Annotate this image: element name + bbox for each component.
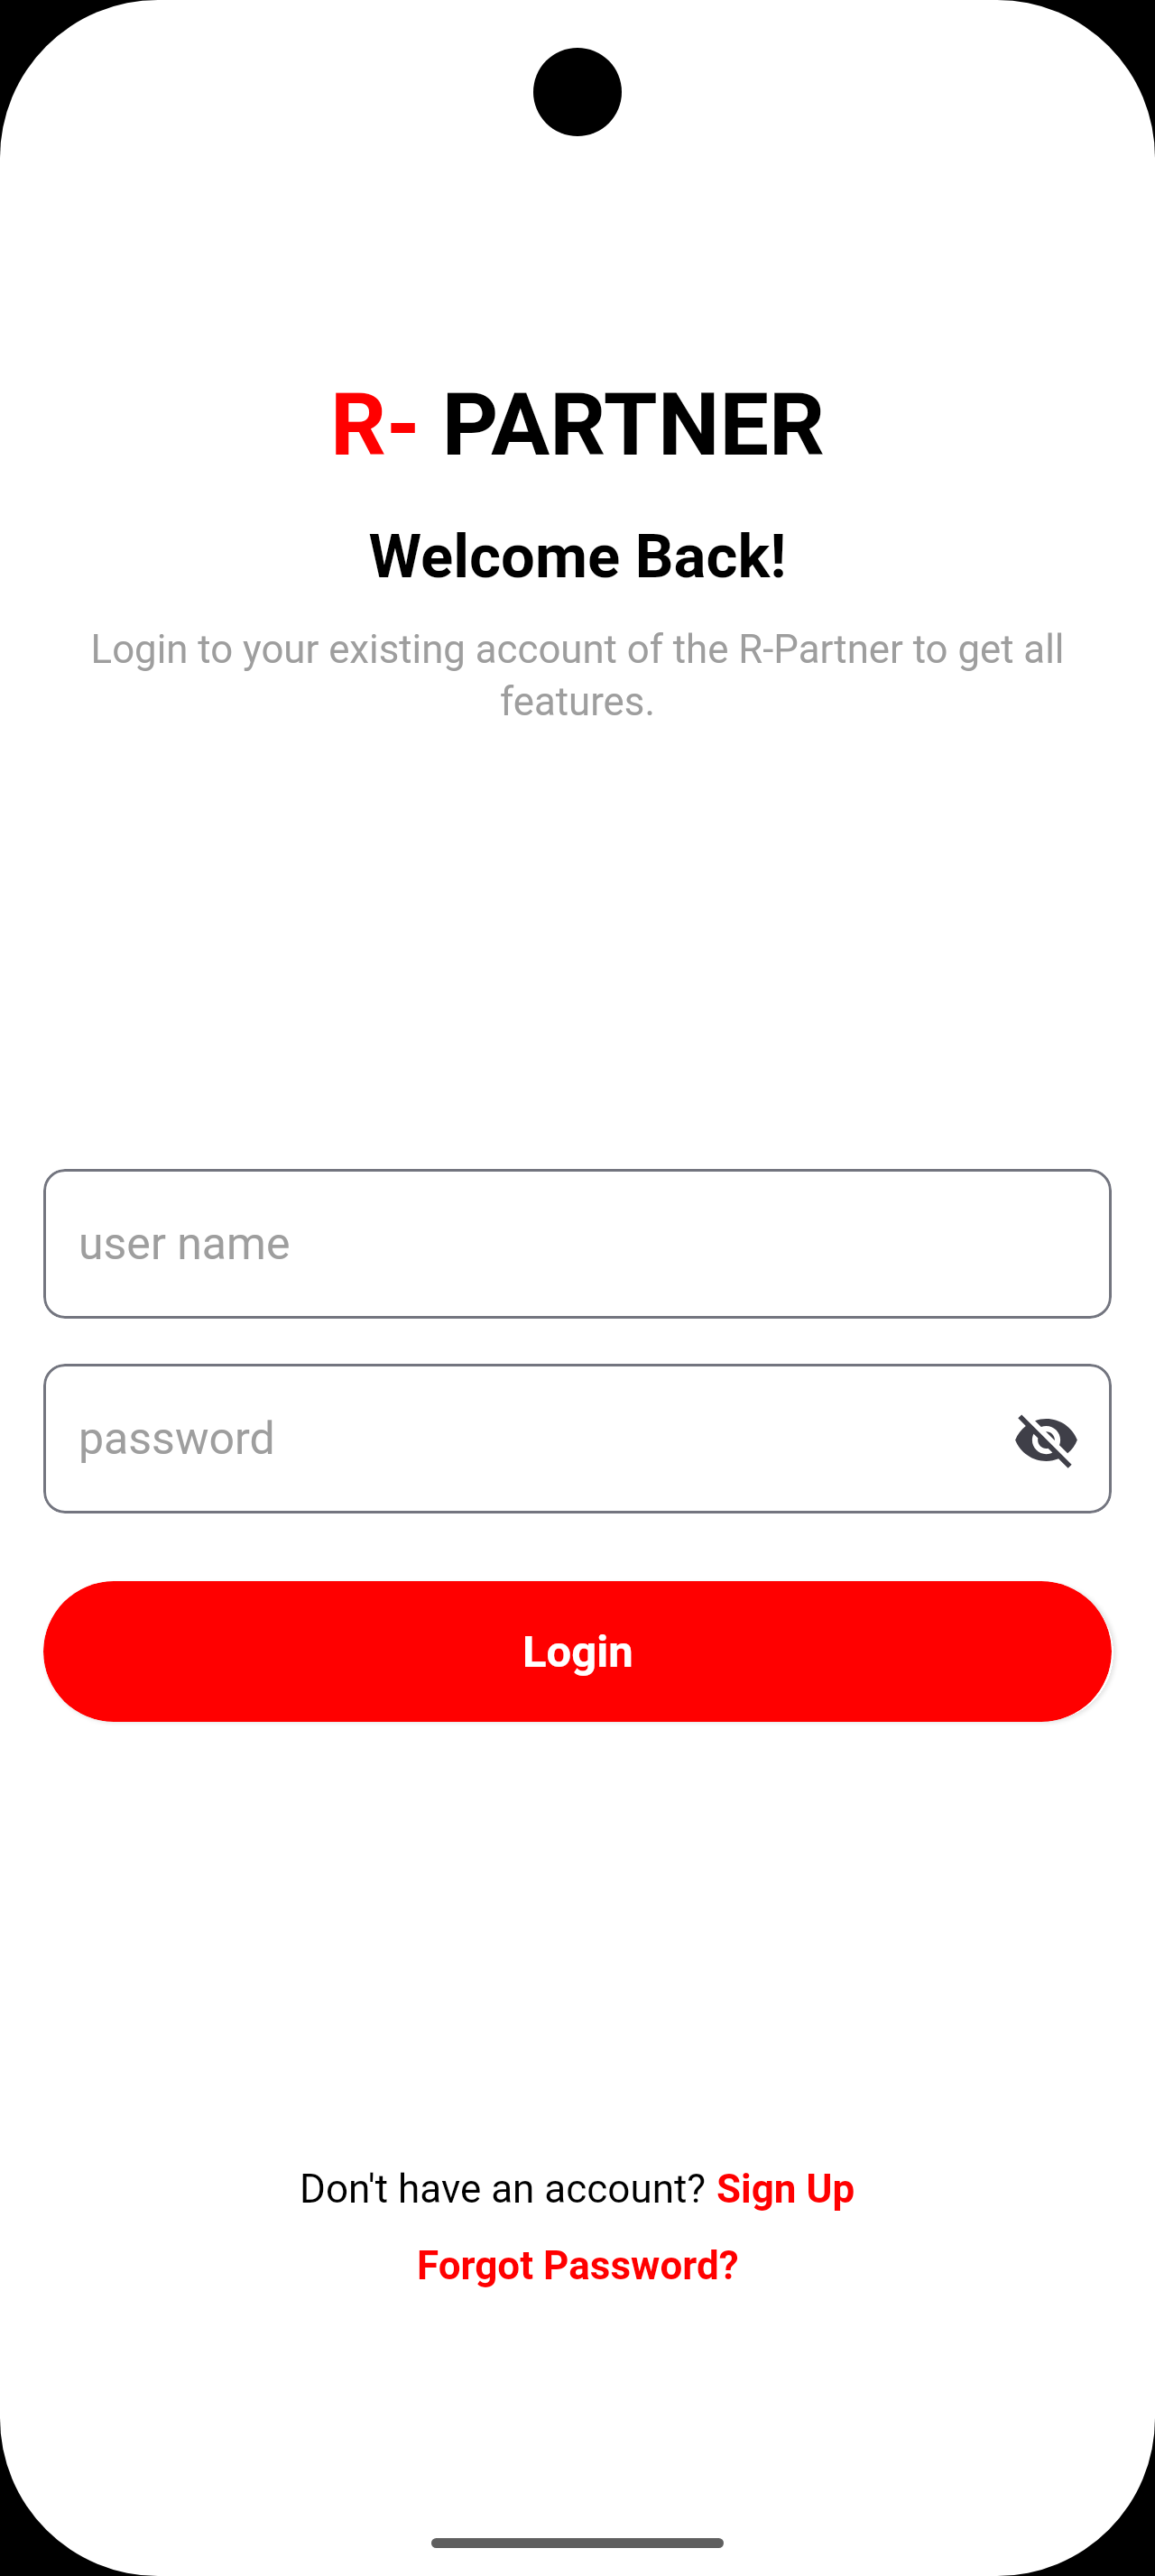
button[interactable]: Forgot Password? bbox=[417, 2242, 739, 2289]
button[interactable]: password bbox=[43, 1364, 1112, 1513]
button[interactable]: Toggle password visibility bbox=[1010, 1403, 1082, 1475]
staticText: Login bbox=[522, 1626, 633, 1678]
staticText: Sign Up bbox=[716, 2166, 855, 2213]
staticText: Login to your existing account of the R-… bbox=[47, 626, 1108, 725]
button[interactable]: user name bbox=[43, 1169, 1112, 1319]
staticText: Forgot Password? bbox=[417, 2242, 739, 2289]
staticText: Welcome Back! bbox=[368, 521, 787, 593]
button[interactable]: Login bbox=[43, 1581, 1112, 1722]
staticText: user name bbox=[79, 1218, 291, 1271]
staticText: Don't have an account? bbox=[300, 2166, 716, 2213]
button[interactable]: Sign Up bbox=[716, 2166, 855, 2213]
staticText: R- PARTNER bbox=[330, 373, 825, 476]
staticText: password bbox=[79, 1412, 275, 1466]
